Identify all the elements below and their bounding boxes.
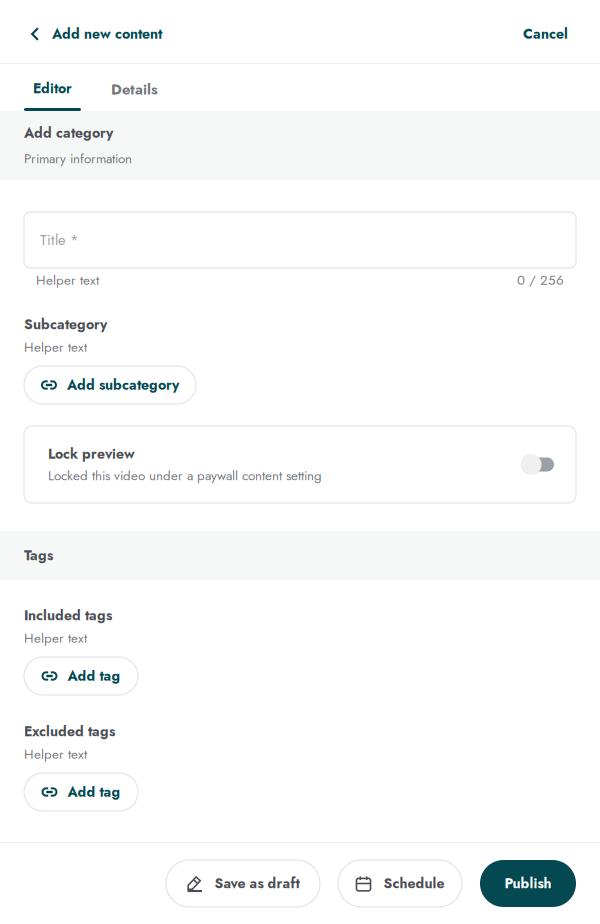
button[interactable]: Lock preview toggle <box>520 452 552 476</box>
staticText: Title * <box>40 229 79 251</box>
staticText: Helper text <box>24 337 87 357</box>
button[interactable]: Add new content <box>0 0 178 63</box>
staticText: Excluded tags <box>24 721 115 742</box>
staticText: Helper text <box>24 744 87 764</box>
staticText: Included tags <box>24 605 112 626</box>
staticText: Add subcategory <box>67 375 179 395</box>
button[interactable]: Publish <box>480 860 576 907</box>
staticText: Publish <box>504 873 551 894</box>
button[interactable]: Cancel <box>499 0 600 63</box>
staticText: Locked this video under a paywall conten… <box>48 466 322 485</box>
staticText: Subcategory <box>24 314 107 335</box>
staticText: 0 / 256 <box>517 270 564 290</box>
button[interactable]: Schedule <box>338 860 462 907</box>
staticText: Save as draft <box>214 873 299 894</box>
staticText: Details <box>111 79 158 100</box>
staticText: Add tag <box>67 782 120 802</box>
staticText: Helper text <box>36 270 99 290</box>
staticText: Add new content <box>52 24 162 44</box>
staticText: Helper text <box>24 628 87 648</box>
button[interactable]: Add tag <box>24 657 138 695</box>
staticText: Primary information <box>24 149 132 168</box>
button[interactable]: Details <box>105 65 164 109</box>
staticText: Lock preview <box>48 444 135 464</box>
button[interactable]: Add subcategory <box>24 366 196 404</box>
button[interactable]: Editor <box>24 64 81 111</box>
staticText: Editor <box>33 78 72 99</box>
staticText: Add category <box>24 123 113 143</box>
staticText: Schedule <box>383 873 444 894</box>
button[interactable]: Save as draft <box>166 860 320 907</box>
staticText: Tags <box>24 545 53 566</box>
staticText: Cancel <box>523 24 568 44</box>
button[interactable]: Add tag <box>24 773 138 811</box>
staticText: Add tag <box>67 666 120 686</box>
